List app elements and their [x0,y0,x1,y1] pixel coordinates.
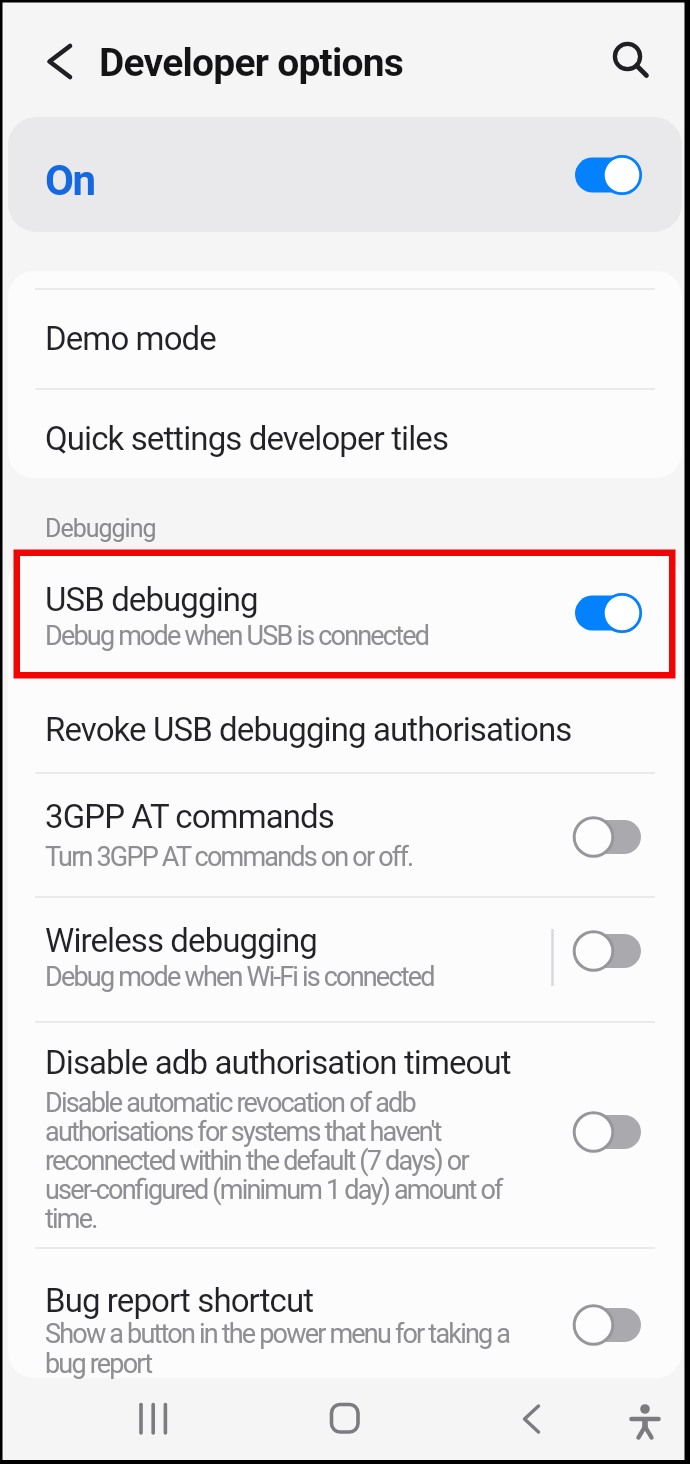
button[interactable] [8,676,682,773]
staticText: On [45,156,95,205]
button[interactable] [8,1248,682,1378]
button[interactable] [8,556,682,676]
staticText: USB debugging [45,580,258,619]
button[interactable] [600,28,662,90]
button[interactable] [25,32,85,90]
staticText: Wireless debugging [45,921,317,960]
button[interactable] [115,1388,190,1456]
button[interactable] [8,1022,682,1248]
staticText: Developer options [99,40,404,86]
staticText: Revoke USB debugging authorisations [45,710,572,749]
staticText: Disable adb authorisation timeout [45,1043,511,1082]
staticText: Debug mode when USB is connected [45,620,429,652]
button[interactable] [8,773,682,897]
staticText: Debug mode when Wi-Fi is connected [45,961,434,993]
button[interactable]: On [8,117,682,232]
staticText: Bug report shortcut [45,1281,314,1320]
button[interactable] [307,1388,382,1456]
staticText: Debugging [45,514,156,543]
button[interactable] [495,1388,570,1456]
staticText: Show a button in the power menu for taki… [45,1318,510,1379]
staticText: 3GPP AT commands [45,797,334,836]
button[interactable] [608,1388,683,1456]
staticText: Disable automatic revocation of adb auth… [45,1087,502,1234]
button[interactable] [8,389,682,478]
staticText: Turn 3GPP AT commands on or off. [45,841,413,873]
staticText: Quick settings developer tiles [45,419,449,458]
button[interactable] [8,897,682,1022]
button[interactable] [8,289,682,389]
staticText: Demo mode [45,319,216,358]
